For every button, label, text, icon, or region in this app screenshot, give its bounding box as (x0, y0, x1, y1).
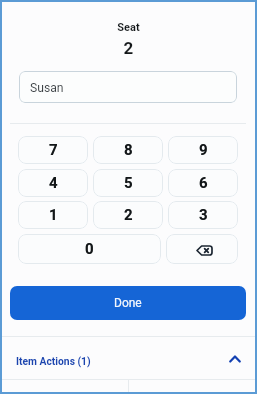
button[interactable]: Item Actions (1) (2, 340, 255, 382)
button[interactable]: 1 (18, 201, 88, 229)
staticText: 2 (124, 206, 133, 224)
staticText: 0 (85, 240, 94, 258)
button[interactable]: Done (10, 286, 246, 320)
staticText: 1 (49, 206, 58, 224)
button[interactable]: 7 (18, 136, 88, 164)
staticText: 5 (124, 174, 133, 192)
staticText: 2 (2, 38, 255, 58)
staticText: 1 (49, 206, 58, 224)
staticText: 9 (199, 141, 208, 159)
staticText: 6 (199, 174, 208, 192)
button[interactable]: 0 (18, 234, 161, 264)
staticText: 0 (85, 240, 94, 258)
button[interactable]: 9 (168, 136, 238, 164)
other: Collapse Item Actions (228, 353, 242, 365)
staticText: 2 (124, 206, 133, 224)
staticText: Item Actions (1) (16, 355, 91, 367)
staticText: Seat (2, 21, 255, 34)
staticText: 5 (124, 174, 133, 192)
staticText: 3 (199, 206, 208, 224)
button[interactable]: 6 (168, 169, 238, 197)
staticText: Susan (30, 81, 64, 95)
staticText: 4 (49, 174, 58, 192)
staticText: 7 (49, 141, 58, 159)
button[interactable]: 5 (93, 169, 163, 197)
button[interactable]: 4 (18, 169, 88, 197)
button[interactable]: 2 (93, 201, 163, 229)
staticText: 6 (199, 174, 208, 192)
staticText: 8 (124, 141, 133, 159)
staticText: 8 (124, 141, 133, 159)
button[interactable]: 3 (168, 201, 238, 229)
staticText: 4 (49, 174, 58, 192)
button[interactable]: Backspace (166, 234, 238, 264)
staticText: Done (114, 296, 142, 310)
staticText: 7 (49, 141, 58, 159)
staticText: 9 (199, 141, 208, 159)
button[interactable]: Susan (19, 71, 237, 103)
button[interactable]: 8 (93, 136, 163, 164)
staticText: 3 (199, 206, 208, 224)
